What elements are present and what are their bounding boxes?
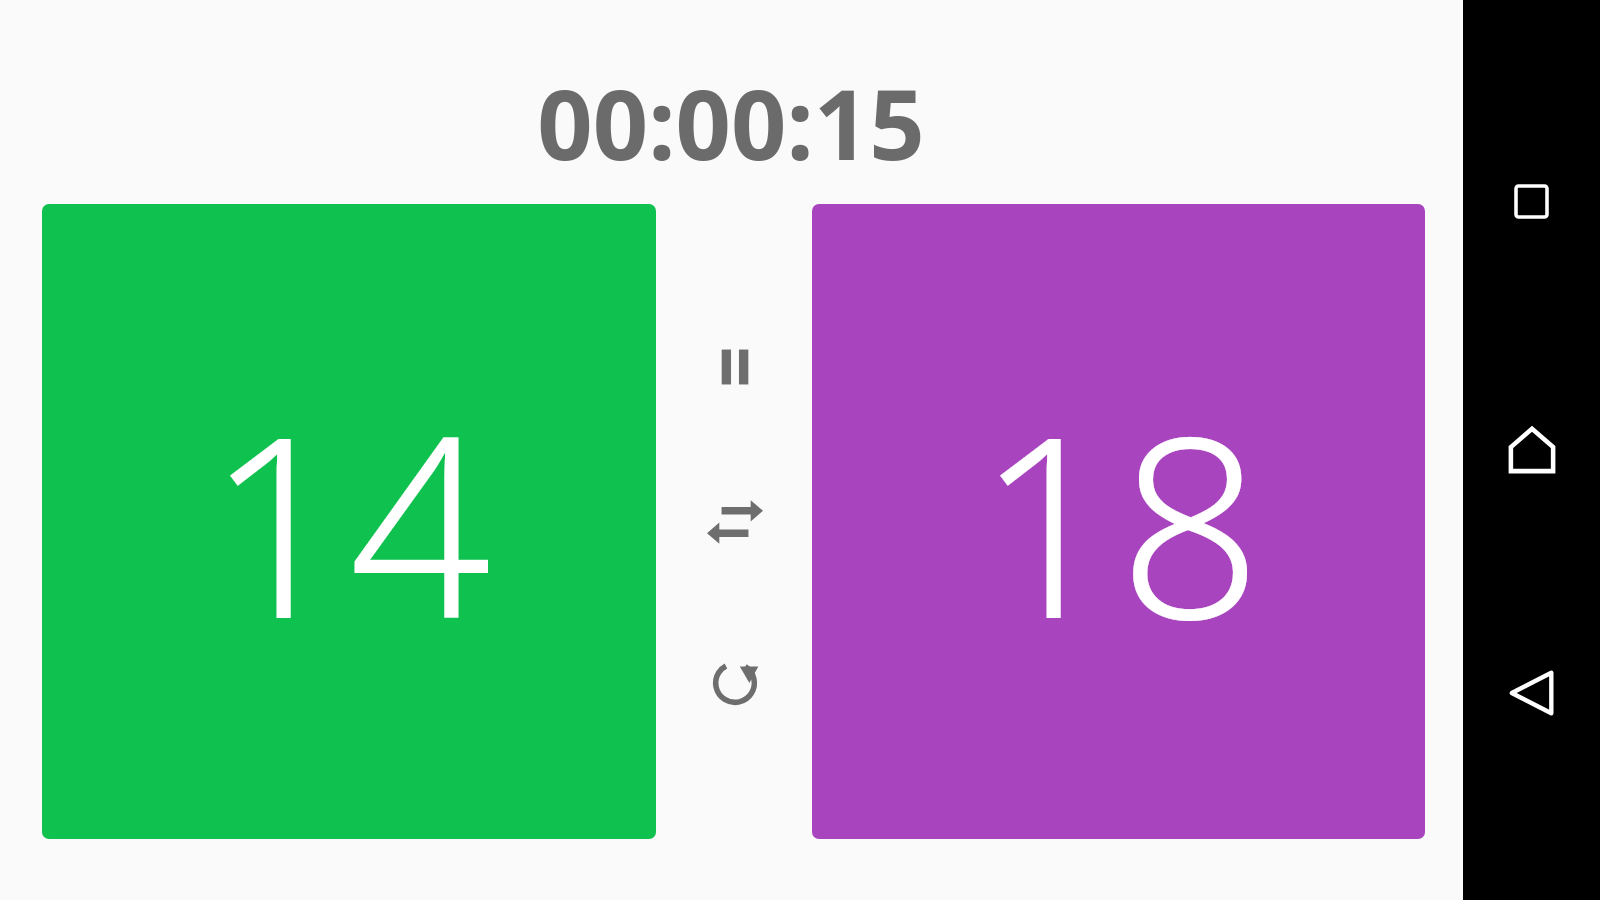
button[interactable]: Swap scores — [690, 477, 780, 567]
button[interactable]: Reset — [690, 638, 780, 728]
staticText: 00:00:15 — [537, 56, 925, 188]
staticText: 18 — [976, 351, 1262, 692]
button[interactable]: 14 — [42, 204, 656, 839]
button[interactable]: 00:00:15 — [537, 56, 925, 188]
button[interactable]: Home — [1486, 404, 1577, 495]
button[interactable]: Pause timer — [690, 322, 780, 412]
button[interactable]: Back — [1486, 647, 1577, 738]
button[interactable]: Recent apps — [1486, 156, 1577, 247]
button[interactable]: 18 — [812, 204, 1425, 839]
staticText: 14 — [206, 351, 492, 692]
